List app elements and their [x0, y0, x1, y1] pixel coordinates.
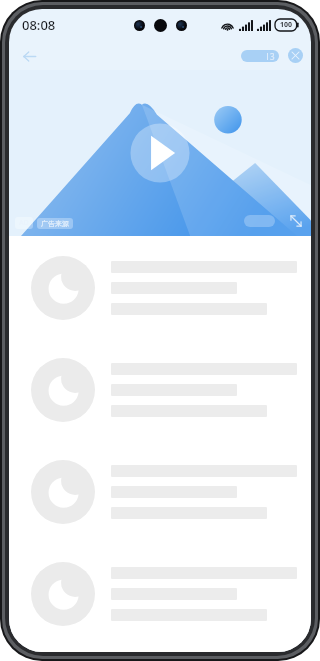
staticText: AD — [19, 218, 29, 228]
staticText: 100 — [280, 20, 293, 30]
button[interactable]: 广告来源 — [37, 218, 73, 229]
button[interactable] — [9, 562, 311, 626]
button[interactable]: Back — [15, 42, 43, 70]
button[interactable]: Expand — [287, 212, 304, 229]
staticText: 08:08 — [22, 16, 56, 34]
button[interactable]: Mute — [244, 215, 275, 227]
button[interactable] — [9, 460, 311, 524]
button[interactable] — [9, 358, 311, 422]
button[interactable]: 3 — [241, 50, 279, 62]
button[interactable]: AD — [15, 217, 33, 229]
button[interactable] — [9, 256, 311, 320]
staticText: 3 — [270, 51, 275, 62]
button[interactable]: AD — [9, 70, 311, 236]
staticText: 广告来源 — [41, 219, 69, 228]
button[interactable]: Close — [288, 48, 303, 63]
